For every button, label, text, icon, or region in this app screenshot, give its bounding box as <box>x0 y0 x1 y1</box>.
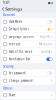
staticText: Set password <box>9 71 26 75</box>
button[interactable]: Set password <box>1 69 55 77</box>
staticText: Default folder <box>9 27 29 31</box>
staticText: Medium <box>39 42 50 46</box>
button[interactable]: Start of the week <box>1 48 55 55</box>
staticText: Start of the week <box>9 50 32 53</box>
staticText: Others <box>3 87 12 90</box>
button[interactable]: Settings <box>0 5 24 12</box>
staticText: Security <box>3 65 13 68</box>
staticText: Notification Bar <box>9 57 30 61</box>
staticText: Dark Mode <box>9 20 23 23</box>
staticText: Settings <box>5 6 22 12</box>
button[interactable]: Font size <box>1 40 55 48</box>
button[interactable]: Language Options <box>1 33 55 40</box>
staticText: ▮▮ ▰ <box>48 1 53 4</box>
button[interactable]: Notification Bar <box>1 55 55 63</box>
staticText: Language Options <box>9 35 34 38</box>
staticText: 9:41 <box>3 1 10 4</box>
staticText: Share <box>9 93 16 97</box>
staticText: Sunday <box>41 50 50 53</box>
button[interactable]: Default folder <box>1 25 55 33</box>
staticText: Font size <box>9 42 21 46</box>
button[interactable]: Dark Mode <box>1 18 55 25</box>
staticText: General <box>3 13 15 17</box>
staticText: Change password <box>9 79 33 82</box>
button[interactable]: Change password <box>1 77 55 84</box>
button[interactable]: Share <box>1 91 55 99</box>
staticText: English <box>40 35 50 38</box>
